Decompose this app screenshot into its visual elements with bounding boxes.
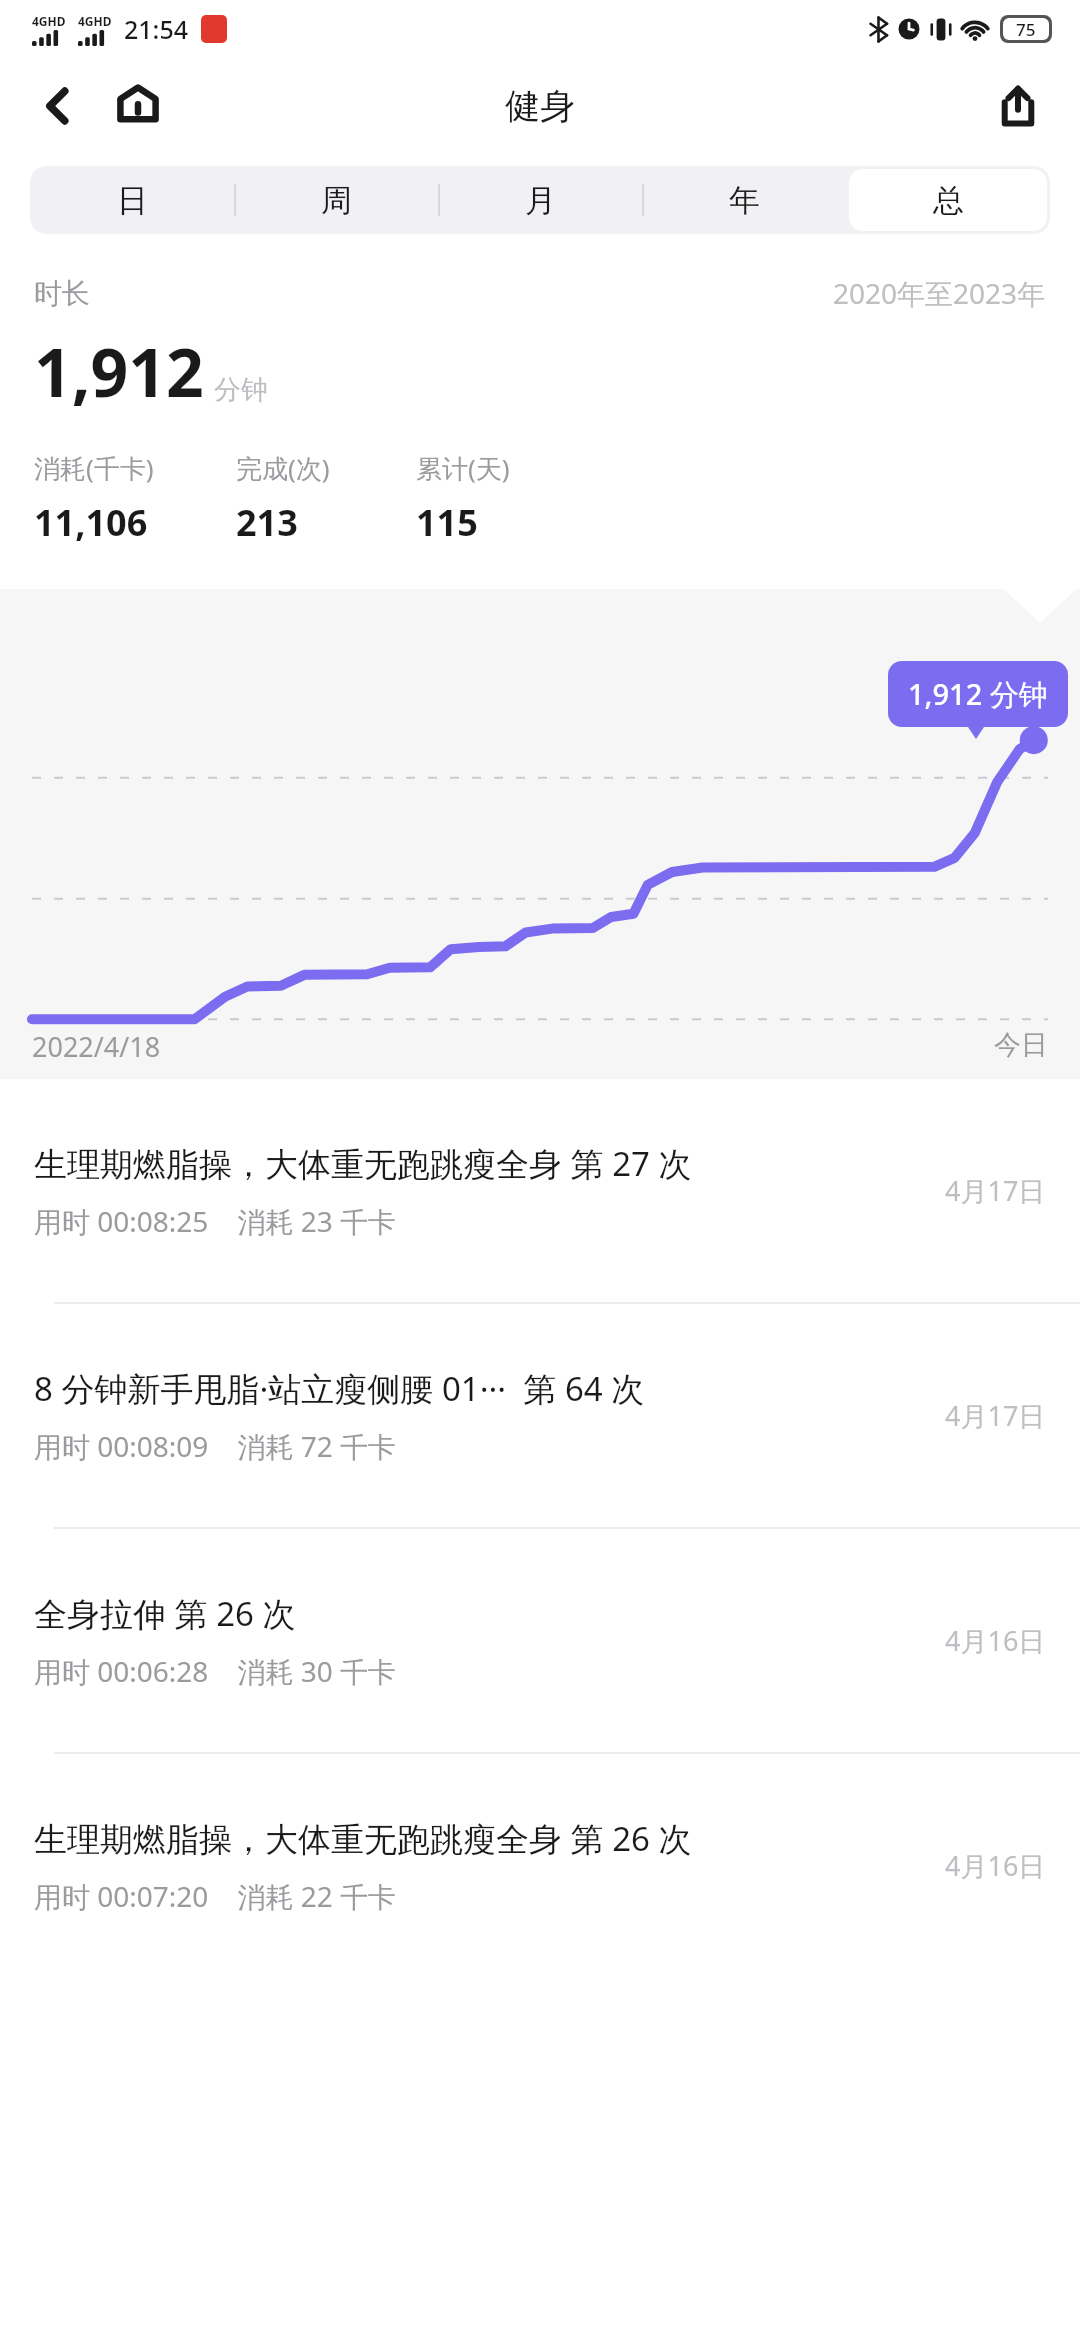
staticText: 2022/4/18 bbox=[32, 1028, 161, 1065]
staticText: 4月17日 bbox=[945, 1397, 1046, 1434]
button[interactable]: 月 bbox=[441, 169, 639, 231]
staticText: 4月16日 bbox=[945, 1622, 1046, 1659]
staticText: 周 bbox=[321, 181, 352, 220]
staticText: 2020年至2023年 bbox=[833, 274, 1046, 312]
staticText: 4月16日 bbox=[945, 1847, 1046, 1884]
staticText: 月 bbox=[525, 181, 556, 220]
staticText: 生理期燃脂操，大体重无跑跳瘦全身 第 27 次 bbox=[34, 1141, 692, 1186]
staticText: 4GHD bbox=[32, 13, 66, 29]
staticText: 总 bbox=[933, 181, 964, 220]
button[interactable]: 8 分钟新手甩脂·站立瘦侧腰 01··· 第 64 次 bbox=[0, 1304, 1080, 1527]
staticText: 日 bbox=[117, 181, 148, 220]
staticText: 健身 bbox=[505, 84, 575, 128]
staticText: 1,912 bbox=[34, 326, 204, 416]
staticText: 4月17日 bbox=[945, 1172, 1046, 1209]
button[interactable]: 周 bbox=[237, 169, 435, 231]
button[interactable]: 生理期燃脂操，大体重无跑跳瘦全身 第 26 次 bbox=[0, 1754, 1080, 1977]
button[interactable]: 总 bbox=[849, 169, 1047, 231]
staticText: 时长 bbox=[34, 276, 90, 311]
staticText: 115 bbox=[416, 498, 478, 547]
button[interactable]: 全身拉伸 第 26 次 bbox=[0, 1529, 1080, 1752]
staticText: 4GHD bbox=[78, 13, 112, 29]
staticText: 用时 00:08:25 消耗 23 千卡 bbox=[34, 1202, 397, 1240]
staticText: 21:54 bbox=[124, 12, 189, 46]
staticText: 用时 00:06:28 消耗 30 千卡 bbox=[34, 1652, 397, 1690]
staticText: 用时 00:08:09 消耗 72 千卡 bbox=[34, 1427, 397, 1465]
staticText: 75 bbox=[1016, 18, 1036, 40]
staticText: 8 分钟新手甩脂·站立瘦侧腰 01··· 第 64 次 bbox=[34, 1366, 645, 1411]
button[interactable]: 生理期燃脂操，大体重无跑跳瘦全身 第 27 次 bbox=[0, 1079, 1080, 1302]
staticText: 消耗(千卡) bbox=[34, 450, 154, 486]
staticText: 分钟 bbox=[214, 373, 268, 407]
staticText: 累计(天) bbox=[416, 450, 510, 486]
button[interactable]: Back bbox=[18, 66, 98, 146]
staticText: 生理期燃脂操，大体重无跑跳瘦全身 第 26 次 bbox=[34, 1816, 692, 1861]
staticText: 今日 bbox=[994, 1028, 1048, 1062]
staticText: 11,106 bbox=[34, 498, 148, 547]
staticText: 用时 00:07:20 消耗 22 千卡 bbox=[34, 1877, 397, 1915]
staticText: 年 bbox=[729, 181, 760, 220]
staticText: 完成(次) bbox=[236, 450, 330, 486]
staticText: 全身拉伸 第 26 次 bbox=[34, 1591, 296, 1636]
staticText: 1,912 分钟 bbox=[908, 674, 1048, 714]
button[interactable]: 年 bbox=[645, 169, 843, 231]
button[interactable]: Home bbox=[98, 66, 178, 146]
staticText: 213 bbox=[236, 498, 298, 547]
button[interactable]: 日 bbox=[33, 169, 231, 231]
button[interactable]: Share bbox=[978, 66, 1058, 146]
